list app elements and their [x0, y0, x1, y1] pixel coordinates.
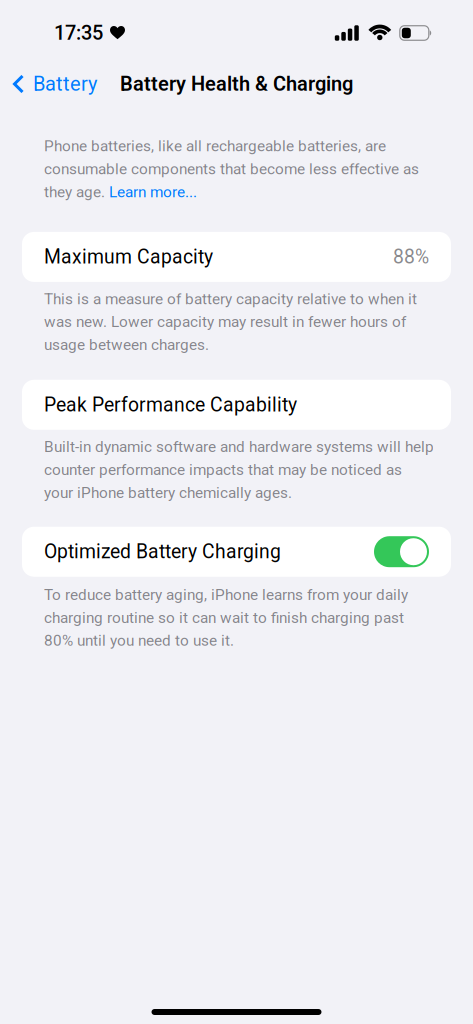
button[interactable]: Peak Performance Capability — [0, 380, 473, 430]
staticText: 17:35 — [54, 21, 103, 45]
staticText: usage between charges. — [44, 336, 209, 354]
staticText: To reduce battery aging, iPhone learns f… — [44, 586, 408, 604]
staticText: charging routine so it can wait to finis… — [44, 609, 404, 627]
staticText: This is a measure of battery capacity re… — [44, 290, 417, 308]
staticText: 88% — [393, 246, 429, 268]
staticText: Phone batteries, like all rechargeable b… — [44, 137, 386, 155]
staticText: Battery Health & Charging — [120, 72, 353, 96]
staticText: Learn more... — [109, 183, 197, 201]
button[interactable]: Optimized Battery Charging — [374, 536, 429, 567]
staticText: Maximum Capacity — [44, 246, 213, 268]
button[interactable]: Learn more... — [109, 183, 197, 201]
staticText: they age. — [44, 183, 109, 201]
staticText: Battery — [33, 72, 97, 96]
staticText: 80% until you need to use it. — [44, 632, 234, 650]
staticText: Peak Performance Capability — [44, 393, 297, 416]
staticText: was new. Lower capacity may result in fe… — [44, 313, 406, 331]
staticText: Built-in dynamic software and hardware s… — [44, 438, 434, 456]
staticText: Optimized Battery Charging — [44, 540, 281, 563]
staticText: counter performance impacts that may be … — [44, 461, 402, 479]
staticText: consumable components that become less e… — [44, 160, 419, 178]
staticText: your iPhone battery chemically ages. — [44, 484, 292, 502]
button[interactable]: Back — [13, 72, 97, 96]
